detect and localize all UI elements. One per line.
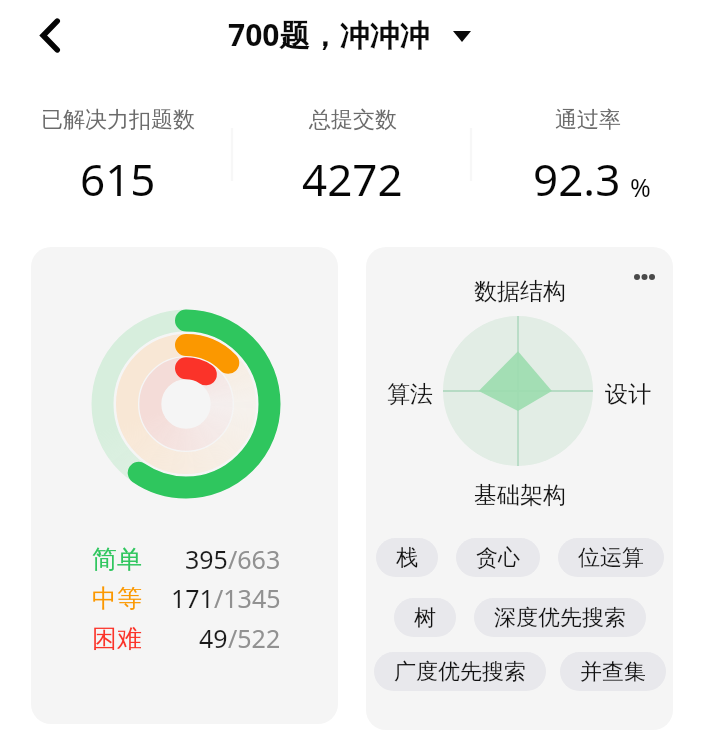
button[interactable]: Back [17, 11, 65, 59]
button[interactable]: 并查集 [560, 652, 666, 691]
staticText: 困难 [92, 623, 142, 654]
button[interactable]: 困难 [92, 621, 281, 655]
button[interactable]: 位运算 [558, 538, 664, 577]
staticText: 栈 [396, 544, 418, 572]
button[interactable]: 贪心 [456, 538, 540, 577]
staticText: 49 [199, 621, 228, 655]
staticText: /1345 [214, 581, 281, 615]
staticText: 深度优先搜索 [494, 604, 626, 632]
staticText: 设计 [605, 380, 651, 409]
staticText: 并查集 [580, 658, 646, 686]
button[interactable]: 已解决力扣题数 [0, 96, 235, 208]
button[interactable]: 深度优先搜索 [474, 598, 646, 637]
staticText: 已解决力扣题数 [41, 106, 195, 134]
staticText: 算法 [387, 380, 433, 409]
staticText: 贪心 [476, 544, 520, 572]
staticText: 92.3 [533, 149, 621, 208]
button[interactable]: 中等 [92, 581, 281, 615]
staticText: 位运算 [578, 544, 644, 572]
button[interactable]: 总提交数 [235, 96, 470, 208]
staticText: 171 [171, 581, 214, 615]
staticText: 广度优先搜索 [394, 658, 526, 686]
staticText: 树 [414, 604, 436, 632]
staticText: 总提交数 [309, 106, 397, 134]
button[interactable]: More options [366, 247, 673, 730]
staticText: 中等 [92, 583, 142, 614]
staticText: 615 [80, 149, 156, 208]
staticText: /663 [228, 542, 281, 576]
button[interactable]: 简单 [31, 247, 338, 724]
staticText: /522 [228, 621, 281, 655]
button[interactable]: 栈 [376, 538, 438, 577]
button[interactable]: 广度优先搜索 [374, 652, 546, 691]
button[interactable]: 通过率 [470, 96, 705, 208]
staticText: % [630, 170, 651, 204]
staticText: 4272 [302, 149, 403, 208]
staticText: 数据结构 [474, 277, 566, 306]
staticText: 395 [185, 542, 228, 576]
staticText: 基础架构 [474, 481, 566, 510]
staticText: 简单 [92, 544, 142, 575]
staticText: 通过率 [555, 106, 621, 134]
button[interactable]: 树 [394, 598, 456, 637]
staticText: 700题，冲冲冲 [228, 14, 430, 55]
button[interactable]: More options [625, 258, 663, 296]
button[interactable]: Select problem list [447, 20, 477, 50]
button[interactable]: 简单 [92, 542, 281, 576]
